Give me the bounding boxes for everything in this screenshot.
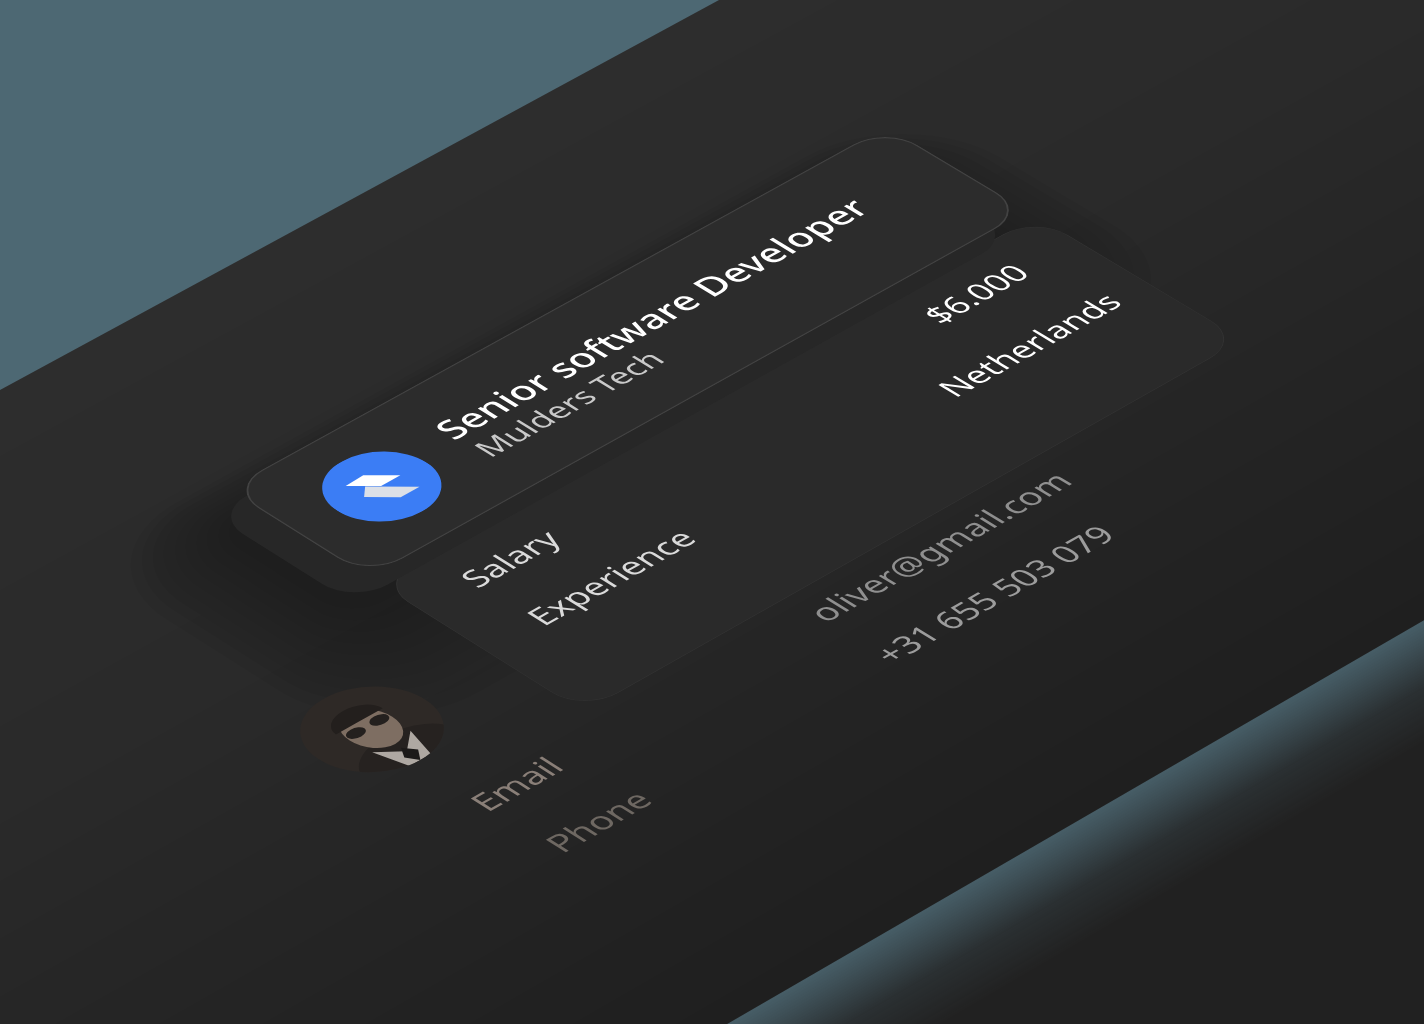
staticText: Netherlands xyxy=(926,286,1132,403)
staticText: Salary xyxy=(448,522,571,594)
staticText: Phone xyxy=(533,783,662,859)
staticText: Experience xyxy=(514,522,706,632)
other: Company logo xyxy=(297,437,466,536)
button[interactable]: Company logo xyxy=(227,126,1028,578)
staticText: $6.000 xyxy=(911,257,1040,330)
other: Profile photo xyxy=(270,669,473,790)
staticText: Mulders Tech xyxy=(462,344,674,463)
staticText: Email xyxy=(458,749,574,818)
button[interactable] xyxy=(377,216,1243,713)
staticText: oliver@gmail.com xyxy=(796,464,1082,628)
staticText: +31 655 503 079 xyxy=(862,518,1125,670)
staticText: Senior software Developer xyxy=(421,190,881,446)
